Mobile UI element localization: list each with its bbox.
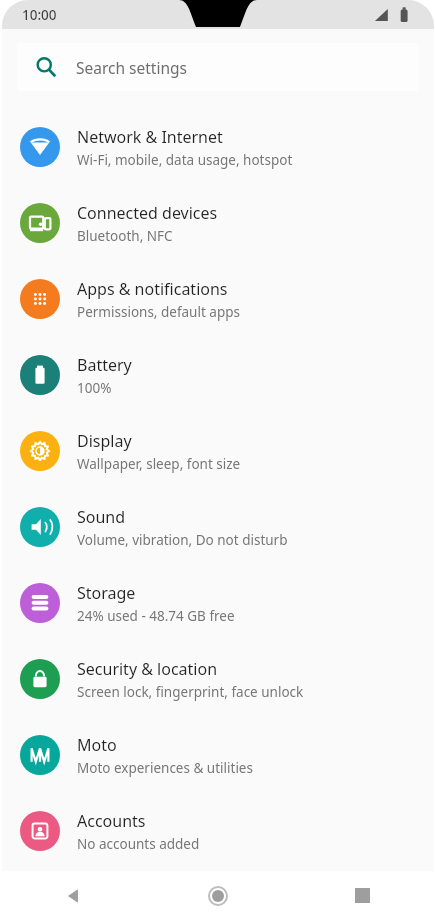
- staticText: 10:00: [22, 6, 57, 24]
- button[interactable]: Display: [2, 413, 434, 489]
- button[interactable]: Battery: [2, 337, 434, 413]
- staticText: Search settings: [76, 57, 187, 78]
- button[interactable]: Recent apps: [290, 871, 434, 920]
- button[interactable]: Security & location: [2, 641, 434, 717]
- staticText: 24% used - 48.74 GB free: [77, 607, 235, 625]
- staticText: Security & location: [77, 658, 218, 680]
- staticText: Network & Internet: [77, 126, 223, 148]
- staticText: Display: [77, 430, 132, 452]
- button[interactable]: Home: [146, 871, 290, 920]
- staticText: Bluetooth, NFC: [77, 227, 173, 245]
- staticText: Screen lock, fingerprint, face unlock: [77, 683, 304, 701]
- button[interactable]: Moto: [2, 717, 434, 793]
- button[interactable]: Connected devices: [2, 185, 434, 261]
- staticText: Wi-Fi, mobile, data usage, hotspot: [77, 151, 293, 169]
- staticText: Moto: [77, 734, 117, 756]
- button[interactable]: Accounts: [2, 793, 434, 869]
- staticText: Volume, vibration, Do not disturb: [77, 531, 288, 549]
- staticText: 100%: [77, 379, 112, 397]
- staticText: Storage: [77, 582, 136, 604]
- staticText: Permissions, default apps: [77, 303, 240, 321]
- staticText: Accounts: [77, 810, 146, 832]
- button[interactable]: Storage: [2, 565, 434, 641]
- button[interactable]: Sound: [2, 489, 434, 565]
- staticText: Wallpaper, sleep, font size: [77, 455, 241, 473]
- button[interactable]: Network & Internet: [2, 109, 434, 185]
- staticText: Battery: [77, 354, 132, 376]
- staticText: Connected devices: [77, 202, 218, 224]
- staticText: No accounts added: [77, 835, 200, 853]
- staticText: Sound: [77, 506, 126, 528]
- button[interactable]: Back: [2, 871, 146, 920]
- button[interactable]: Apps & notifications: [2, 261, 434, 337]
- staticText: Apps & notifications: [77, 278, 228, 300]
- staticText: Moto experiences & utilities: [77, 759, 253, 777]
- button[interactable]: Search settings: [17, 43, 419, 91]
